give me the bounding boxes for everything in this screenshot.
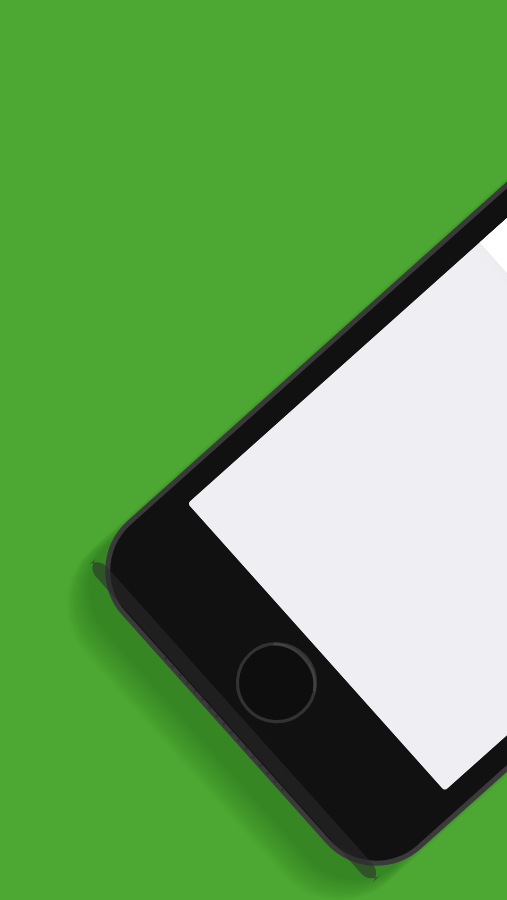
other: Phone mockup on green background <box>0 0 507 900</box>
button[interactable] <box>0 0 507 900</box>
